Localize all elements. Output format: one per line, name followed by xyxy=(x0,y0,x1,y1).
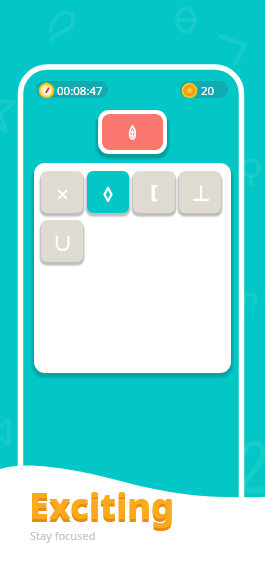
staticText: Exciting xyxy=(29,484,175,533)
button[interactable]: Perpendicular xyxy=(179,171,221,213)
button[interactable]: 00:08:47 xyxy=(36,81,108,98)
staticText: Stay focused xyxy=(30,528,96,543)
staticText: Exciting xyxy=(29,481,175,530)
button[interactable]: Current answer xyxy=(102,114,163,150)
button[interactable]: Bracket xyxy=(133,171,175,213)
staticText: 00:08:47 xyxy=(57,83,103,98)
button[interactable]: Union xyxy=(41,220,83,262)
button[interactable]: Multiply xyxy=(41,171,83,213)
button[interactable]: 20 xyxy=(180,81,228,98)
staticText: 20 xyxy=(201,83,215,98)
button[interactable]: Diamond xyxy=(87,171,129,213)
